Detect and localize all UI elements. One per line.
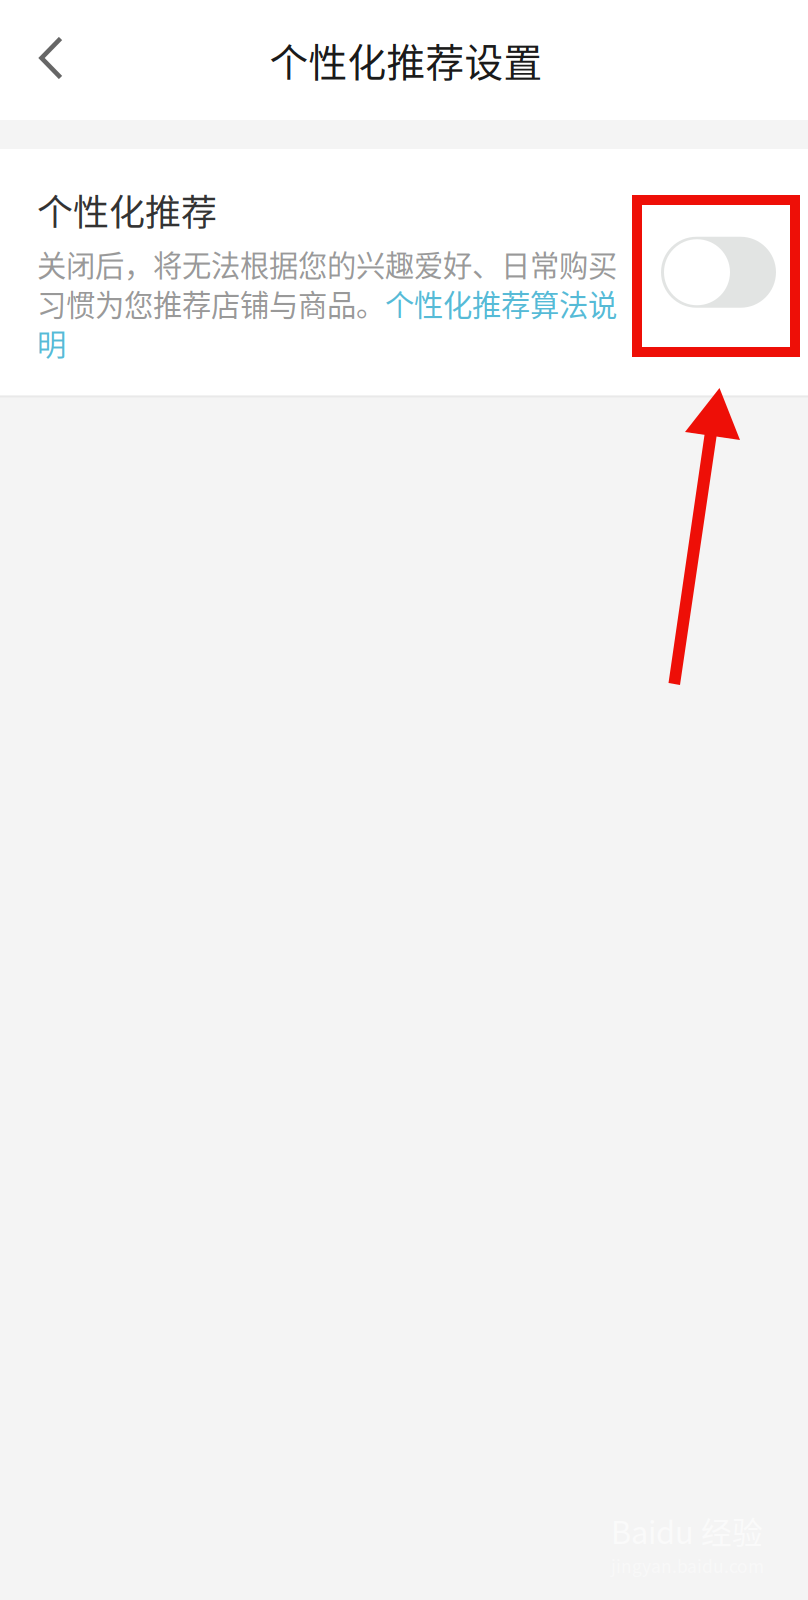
button[interactable]: 个性化推荐: [661, 237, 776, 308]
staticText: 关闭后，将无法根据您的兴趣爱好、日常购买: [37, 242, 617, 285]
button[interactable]: Back: [0, 0, 116, 120]
staticText: 个性化推荐设置: [269, 32, 542, 88]
staticText: 个性化推荐算法说: [385, 282, 617, 324]
button[interactable]: 个性化推荐算法说明: [37, 321, 66, 364]
staticText: 明: [37, 321, 66, 364]
staticText: 习惯为您推荐店铺与商品。: [37, 282, 385, 324]
button[interactable]: 个性化推荐算法说明: [385, 282, 617, 324]
staticText: 个性化推荐: [37, 184, 217, 236]
